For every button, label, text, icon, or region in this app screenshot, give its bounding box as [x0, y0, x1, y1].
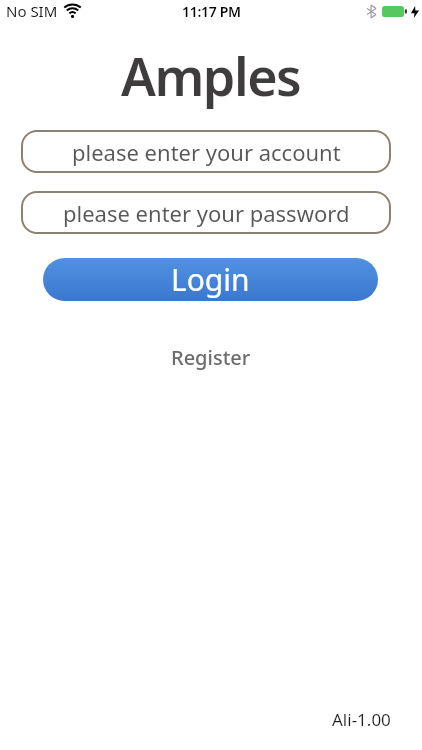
staticText: Amples: [121, 40, 301, 111]
staticText: please enter your password: [63, 198, 350, 228]
staticText: Login: [171, 259, 250, 300]
button[interactable]: Register: [161, 340, 261, 375]
staticText: No SIM: [6, 1, 58, 21]
staticText: please enter your account: [72, 137, 341, 167]
staticText: 11:17 PM: [182, 2, 241, 21]
staticText: Register: [171, 344, 251, 371]
button[interactable]: please enter your account: [21, 130, 391, 173]
button[interactable]: please enter your password: [21, 191, 391, 234]
button[interactable]: Login: [43, 258, 378, 301]
staticText: Ali-1.00: [332, 708, 391, 731]
